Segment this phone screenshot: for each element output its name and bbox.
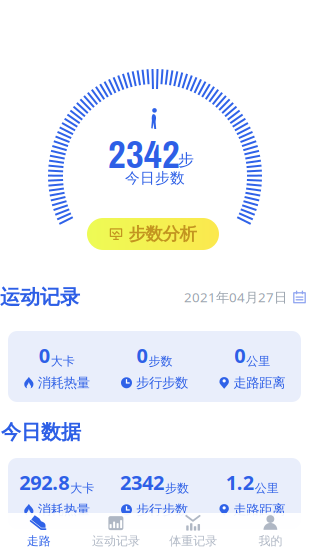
staticText: 1.2 xyxy=(226,469,254,496)
staticText: 步数 xyxy=(165,481,189,496)
button[interactable]: 体重记录 xyxy=(154,511,232,550)
staticText: 0 xyxy=(39,342,50,369)
staticText: 走路距离 xyxy=(233,375,285,391)
staticText: 走路距离 xyxy=(233,502,285,518)
staticText: 步行步数 xyxy=(136,375,188,391)
staticText: 2342 xyxy=(120,469,164,496)
staticText: 消耗热量 xyxy=(38,375,90,391)
button[interactable]: 运动记录 xyxy=(77,511,154,550)
button[interactable]: 我的 xyxy=(232,511,309,550)
staticText: 运动记录 xyxy=(0,285,80,309)
staticText: 步 xyxy=(178,150,194,170)
staticText: 大卡 xyxy=(70,481,94,496)
staticText: 运动记录 xyxy=(92,534,140,548)
button[interactable]: 2021年04月27日 xyxy=(184,288,306,306)
staticText: 292.8 xyxy=(19,469,69,496)
button[interactable]: 走路 xyxy=(0,511,77,550)
staticText: 公里 xyxy=(255,481,279,496)
staticText: 0 xyxy=(136,342,147,369)
staticText: 公里 xyxy=(246,354,270,369)
staticText: 步行步数 xyxy=(136,502,188,518)
staticText: 今日步数 xyxy=(125,169,185,187)
staticText: 消耗热量 xyxy=(38,502,90,518)
staticText: 走路 xyxy=(27,534,51,548)
button[interactable]: 步数分析 xyxy=(87,218,219,250)
staticText: 步数 xyxy=(148,354,172,369)
staticText: 今日数据 xyxy=(1,420,81,444)
staticText: 我的 xyxy=(258,534,282,548)
staticText: 2342 xyxy=(108,128,180,180)
staticText: 步数分析 xyxy=(128,223,196,245)
staticText: 0 xyxy=(234,342,245,369)
staticText: 体重记录 xyxy=(169,534,217,548)
staticText: 大卡 xyxy=(51,354,75,369)
staticText: 2021年04月27日 xyxy=(184,288,287,306)
